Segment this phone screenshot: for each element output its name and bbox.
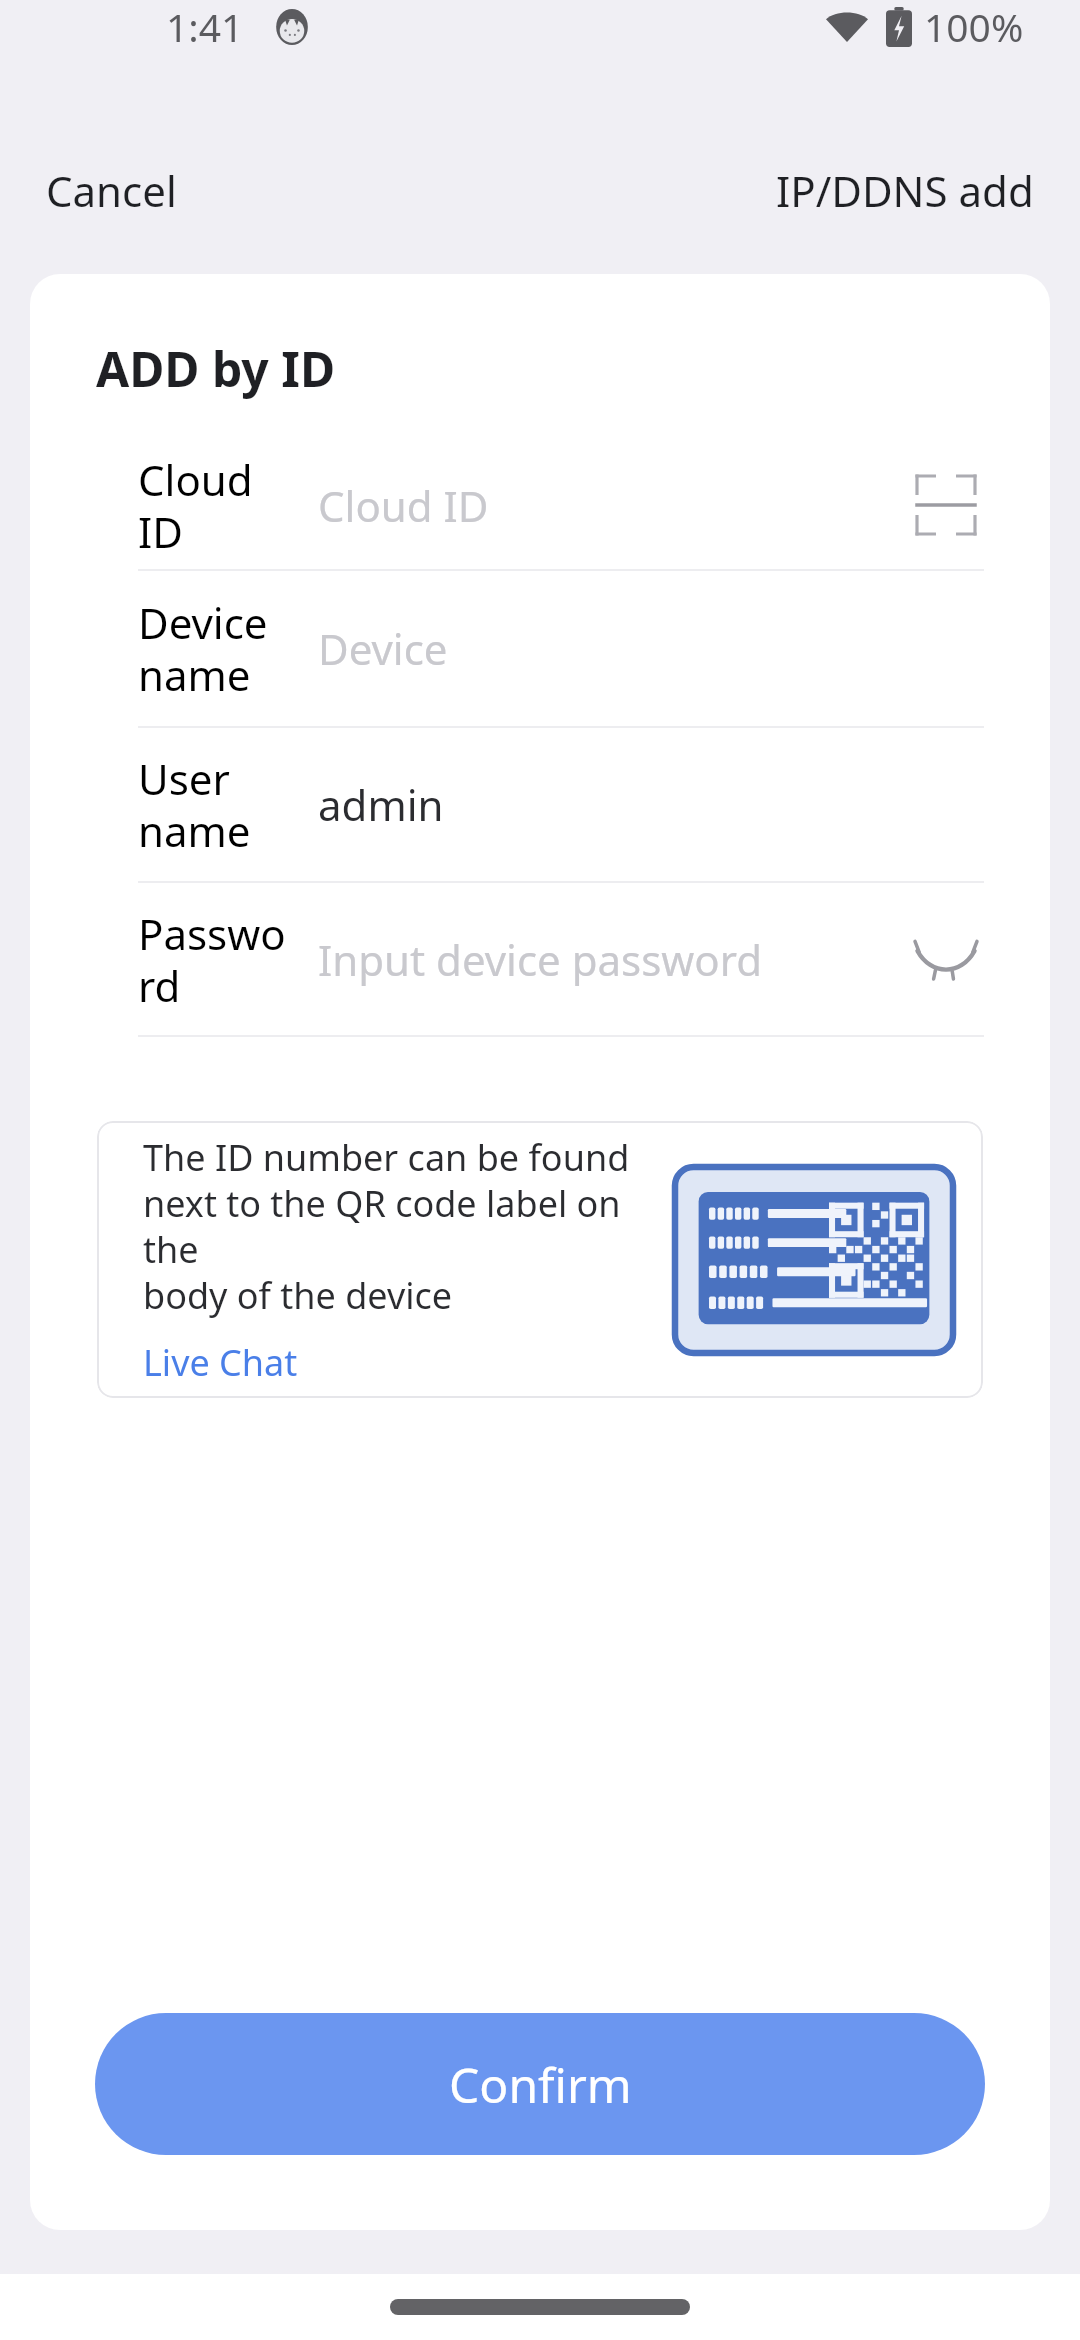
staticText: Password: [138, 905, 296, 1014]
button[interactable]: Live Chat: [143, 1338, 298, 1387]
staticText: User name: [138, 750, 296, 859]
button[interactable]: Cloud ID: [30, 441, 1050, 569]
button[interactable]: Cancel: [24, 146, 199, 235]
staticText: ADD by ID: [96, 336, 336, 401]
staticText: Cloud ID: [318, 477, 489, 534]
staticText: Cloud ID: [138, 451, 296, 560]
button[interactable]: IP/DDNS add: [754, 146, 1056, 235]
staticText: 100%: [924, 0, 1024, 53]
staticText: IP/DDNS add: [776, 162, 1034, 219]
other: Home gesture: [390, 2299, 690, 2315]
button[interactable]: Show password: [908, 921, 984, 997]
staticText: The ID number can be found next to the Q…: [143, 1133, 659, 1320]
staticText: Live Chat: [143, 1338, 298, 1387]
staticText: Input device password: [318, 931, 763, 988]
button[interactable]: Scan QR code: [908, 467, 984, 543]
staticText: Cancel: [46, 162, 177, 219]
button[interactable]: Device name: [30, 571, 1050, 726]
button[interactable]: Password: [30, 883, 1050, 1035]
button[interactable]: User name: [30, 728, 1050, 881]
staticText: Device name: [138, 594, 268, 703]
staticText: admin: [318, 776, 444, 833]
staticText: Device: [318, 620, 448, 677]
staticText: Confirm: [449, 2052, 632, 2117]
staticText: 1:41: [166, 0, 244, 53]
button[interactable]: Confirm: [95, 2013, 985, 2155]
